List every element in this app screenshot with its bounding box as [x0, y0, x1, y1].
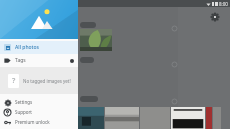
button[interactable]: All photos — [0, 41, 78, 54]
staticText: Premium unlock — [15, 119, 50, 125]
button[interactable]: Settings — [0, 97, 78, 107]
button[interactable] — [80, 96, 98, 102]
button[interactable]: Support — [0, 107, 78, 117]
staticText: Support — [15, 109, 32, 115]
staticText: No tagged images yet! — [23, 78, 71, 84]
staticText: ? — [12, 76, 16, 86]
staticText: All photos — [15, 44, 39, 51]
button[interactable]: Settings — [208, 10, 222, 24]
button[interactable] — [80, 57, 94, 63]
button[interactable] — [80, 22, 96, 28]
button[interactable]: Premium unlock — [0, 117, 78, 127]
staticText: Settings — [15, 99, 33, 105]
button[interactable]: Select — [172, 26, 177, 31]
staticText: 8:00 — [219, 1, 228, 7]
button[interactable]: Select — [172, 99, 177, 104]
button[interactable]: Select — [172, 62, 177, 67]
staticText: Tags — [15, 57, 26, 64]
button[interactable]: Tags — [0, 54, 78, 67]
